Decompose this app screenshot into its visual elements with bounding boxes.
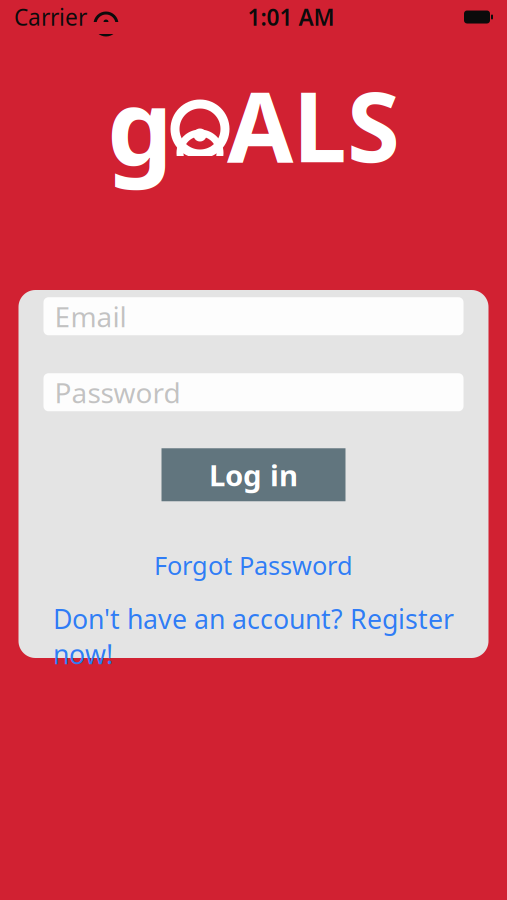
button[interactable]: Email	[43, 297, 463, 335]
button[interactable]: Password	[43, 373, 463, 411]
button[interactable]: Don't have an account? Register now!	[43, 596, 463, 677]
staticText: Carrier	[14, 2, 87, 32]
button[interactable]: Log in	[161, 448, 345, 501]
button[interactable]: Forgot Password	[43, 543, 463, 587]
staticText: Password	[54, 374, 180, 411]
staticText: ALS	[227, 61, 400, 189]
staticText: Don't have an account? Register now!	[53, 601, 454, 672]
staticText: Forgot Password	[154, 548, 353, 582]
staticText: Email	[54, 298, 126, 335]
staticText: 1:01 AM	[247, 2, 334, 32]
staticText: Log in	[209, 455, 298, 494]
staticText: g	[107, 56, 173, 194]
